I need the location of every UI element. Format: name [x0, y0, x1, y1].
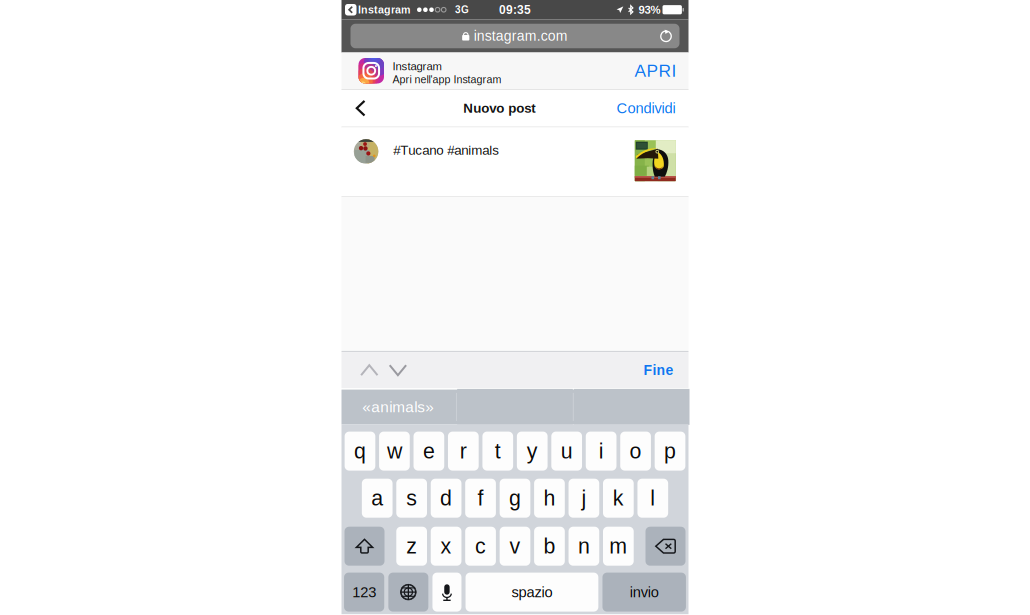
button[interactable]: c: [465, 527, 496, 566]
staticText: t: [495, 439, 501, 463]
button[interactable]: Campo successivo: [384, 355, 412, 385]
button[interactable]: Torna a Instagram: [345, 4, 356, 15]
button[interactable]: i: [586, 432, 616, 471]
staticText: s: [406, 486, 417, 510]
button[interactable]: s: [396, 479, 427, 518]
staticText: y: [527, 439, 538, 463]
staticText: v: [509, 534, 520, 558]
button[interactable]: n: [568, 527, 599, 566]
staticText: k: [613, 486, 624, 510]
button[interactable]: Dettatura: [432, 573, 461, 612]
button[interactable]: e: [413, 432, 444, 471]
staticText: a: [371, 486, 383, 510]
staticText: p: [664, 439, 676, 463]
staticText: 3G: [455, 4, 469, 15]
button[interactable]: r: [448, 432, 479, 471]
staticText: l: [650, 486, 655, 510]
staticText: o: [630, 439, 642, 463]
button[interactable]: k: [603, 479, 634, 518]
button[interactable]: Fine: [637, 356, 679, 384]
button[interactable]: Indietro: [341, 90, 389, 127]
button[interactable]: o: [620, 432, 651, 471]
button[interactable]: «animals»: [340, 389, 456, 425]
staticText: Nuovo post: [463, 101, 535, 116]
button[interactable]: t: [482, 432, 513, 471]
staticText: j: [581, 486, 586, 510]
staticText: instagram.com: [474, 28, 568, 44]
staticText: Condividi: [616, 100, 675, 116]
staticText: Apri nell'app Instagram: [392, 74, 501, 85]
button[interactable]: h: [534, 479, 565, 518]
button[interactable]: p: [655, 432, 685, 471]
staticText: 09:35: [499, 3, 531, 16]
staticText: Instagram: [392, 60, 441, 73]
staticText: e: [423, 439, 435, 463]
button[interactable]: v: [500, 527, 530, 566]
staticText: APRI: [634, 61, 676, 80]
staticText: h: [543, 486, 555, 510]
button[interactable]: 123: [344, 573, 384, 612]
staticText: n: [578, 534, 590, 558]
staticText: «animals»: [362, 398, 434, 415]
button[interactable]: Cancella: [645, 527, 685, 566]
staticText: b: [543, 534, 555, 558]
staticText: r: [460, 439, 467, 463]
staticText: d: [440, 486, 452, 510]
staticText: w: [387, 439, 402, 463]
button[interactable]: q: [345, 432, 375, 471]
staticText: m: [609, 534, 627, 558]
button[interactable]: f: [465, 479, 496, 518]
staticText: i: [599, 439, 604, 463]
staticText: z: [406, 534, 417, 558]
staticText: q: [354, 439, 366, 463]
button[interactable]: u: [551, 432, 582, 471]
staticText: g: [509, 486, 521, 510]
button[interactable]: a: [362, 479, 393, 518]
button[interactable]: spazio: [466, 573, 598, 612]
staticText: 93%: [638, 3, 660, 16]
button[interactable]: j: [568, 479, 599, 518]
button[interactable]: Condividi: [609, 90, 688, 127]
staticText: 123: [352, 584, 376, 600]
button[interactable]: g: [500, 479, 530, 518]
staticText: u: [561, 439, 573, 463]
staticText: spazio: [511, 584, 552, 600]
button[interactable]: Instagram: [341, 52, 688, 89]
button[interactable]: x: [431, 527, 461, 566]
button[interactable]: [574, 389, 689, 425]
button[interactable]: y: [517, 432, 548, 471]
button[interactable]: Campo precedente: [355, 355, 384, 385]
staticText: f: [478, 486, 484, 510]
button[interactable]: l: [637, 479, 668, 518]
button[interactable]: d: [431, 479, 461, 518]
button[interactable]: m: [603, 527, 634, 566]
button[interactable]: w: [379, 432, 410, 471]
staticText: c: [475, 534, 486, 558]
button[interactable]: instagram.com: [350, 24, 679, 48]
button[interactable]: z: [396, 527, 427, 566]
staticText: Fine: [643, 362, 673, 378]
staticText: Instagram: [358, 4, 410, 16]
button[interactable]: Maiuscole: [344, 527, 384, 566]
staticText: invio: [630, 584, 659, 600]
staticText: x: [441, 534, 452, 558]
button[interactable]: invio: [602, 573, 686, 612]
button[interactable]: Cambia tastiera: [388, 573, 428, 612]
staticText: #Tucano #animals: [393, 143, 499, 158]
button[interactable]: b: [534, 527, 565, 566]
